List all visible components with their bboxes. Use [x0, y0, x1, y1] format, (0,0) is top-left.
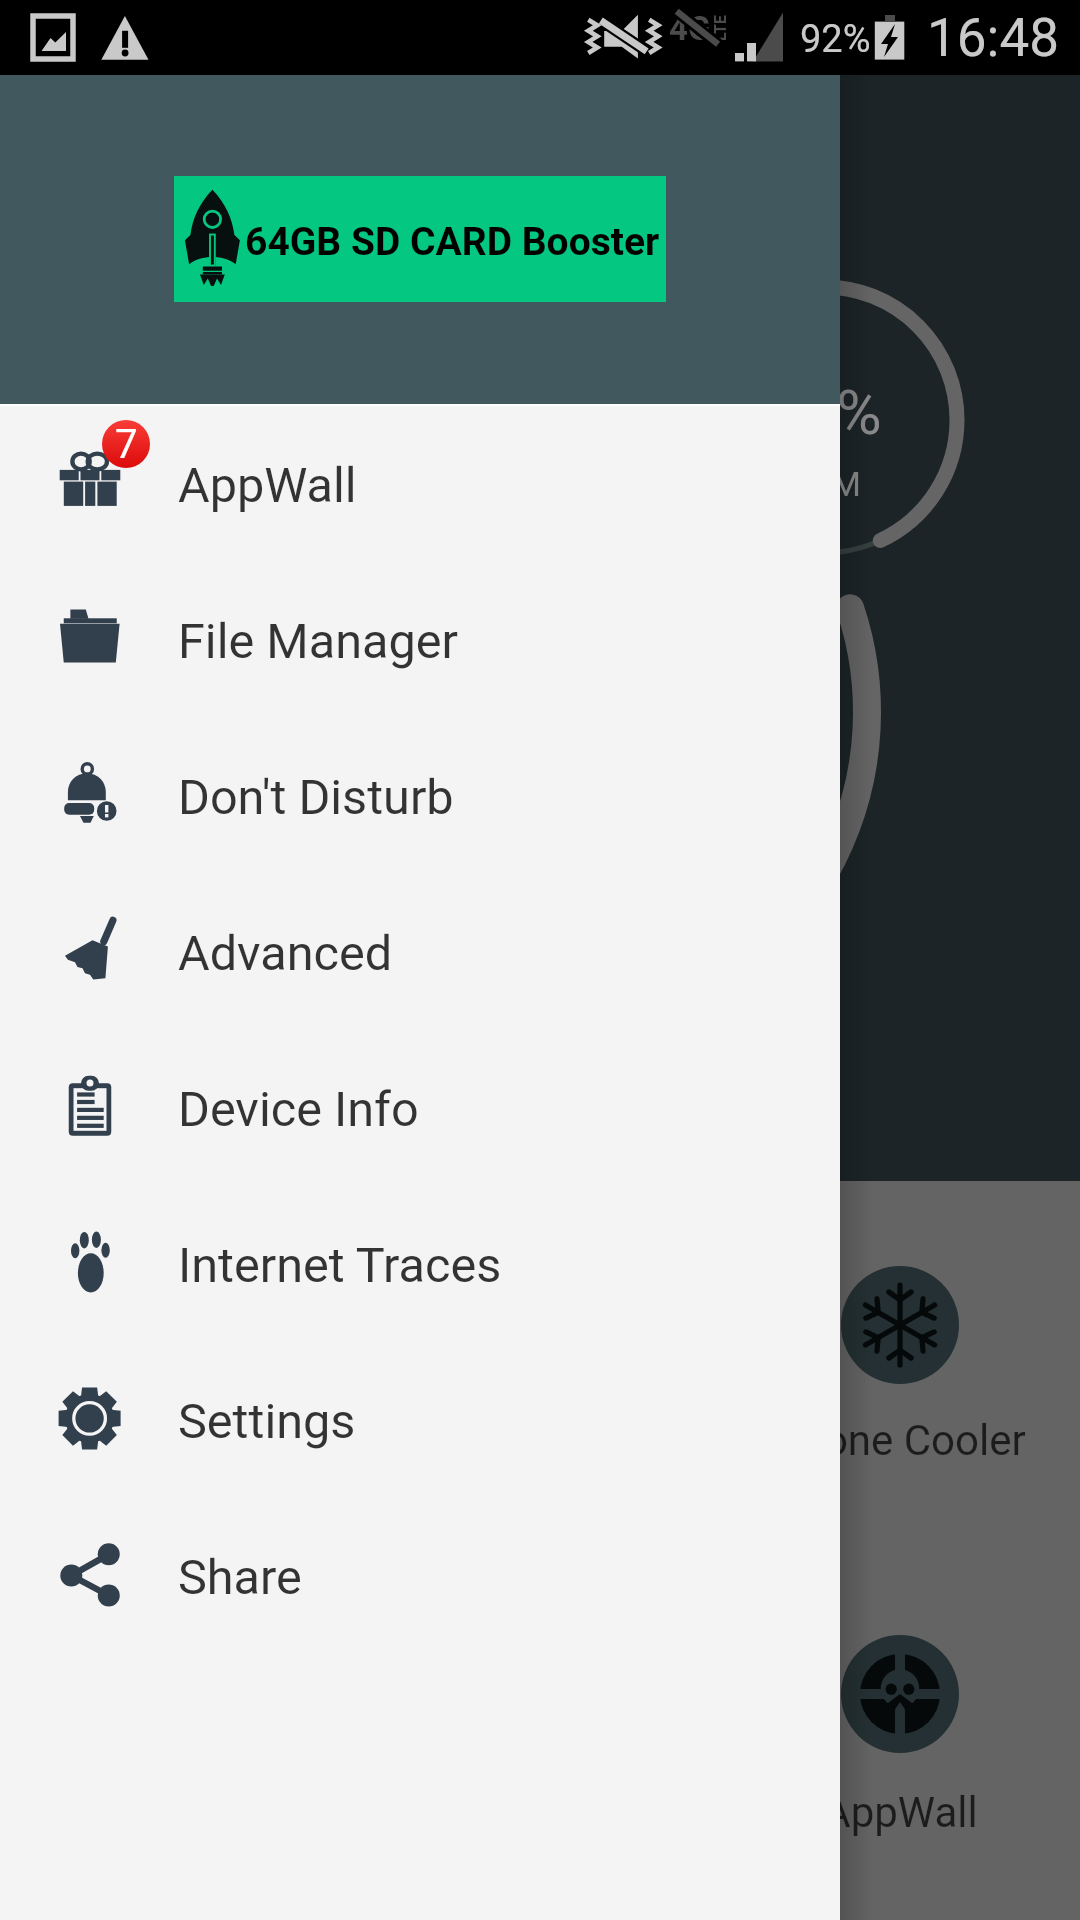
button[interactable]: Settings: [0, 1342, 840, 1498]
button[interactable]: 7: [0, 406, 840, 562]
staticText: AppWall: [178, 457, 357, 514]
staticText: Don't Disturb: [178, 769, 454, 826]
staticText: File Manager: [178, 613, 458, 670]
button[interactable]: Advanced: [0, 874, 840, 1030]
staticText: Share: [178, 1549, 302, 1606]
staticText: LTE: [711, 15, 730, 41]
staticText: Advanced: [178, 925, 393, 982]
staticText: RAM: [788, 464, 861, 504]
button[interactable]: Don't Disturb: [0, 718, 840, 874]
button[interactable]: File Manager: [0, 562, 840, 718]
staticText: 4G: [669, 9, 711, 48]
button[interactable]: Share: [0, 1498, 840, 1654]
staticText: 7: [115, 421, 138, 468]
staticText: Settings: [178, 1393, 356, 1450]
button[interactable]: Internet Traces: [0, 1186, 840, 1342]
staticText: Device Info: [178, 1081, 419, 1138]
staticText: 64GB SD CARD Booster: [245, 219, 660, 265]
staticText: AppWall: [823, 1788, 978, 1837]
staticText: 16:48: [927, 7, 1059, 69]
button[interactable]: Device Info: [0, 1030, 840, 1186]
staticText: 56%: [766, 376, 882, 449]
staticText: 92%: [800, 17, 871, 62]
staticText: Phone Cooler: [774, 1416, 1026, 1465]
button[interactable]: 64GB SD CARD Booster: [174, 176, 666, 302]
staticText: Internet Traces: [178, 1237, 502, 1294]
